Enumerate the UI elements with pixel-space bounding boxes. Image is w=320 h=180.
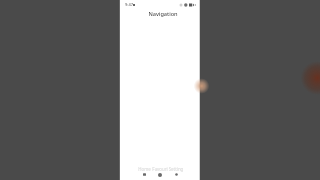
button[interactable]: Home [136, 166, 152, 180]
staticText: Home [138, 166, 151, 172]
button[interactable]: Favourites [152, 166, 168, 180]
staticText: Settings [168, 166, 184, 172]
staticText: Favourites [152, 166, 168, 172]
button[interactable]: Add [190, 79, 204, 93]
staticText: 9:47 [125, 2, 133, 7]
staticText: Navigation [148, 10, 178, 18]
button[interactable]: Settings [168, 166, 184, 180]
